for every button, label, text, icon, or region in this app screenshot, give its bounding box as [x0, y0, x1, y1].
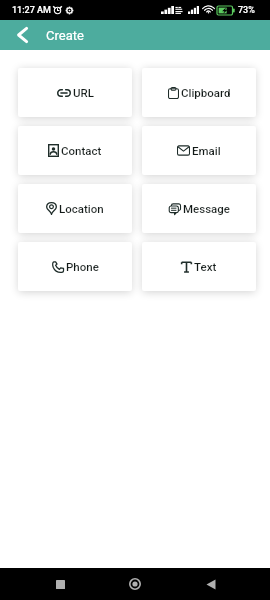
- staticText: Email: [192, 144, 221, 157]
- staticText: URL: [73, 86, 94, 99]
- staticText: Phone: [66, 260, 99, 273]
- button[interactable]: Back: [195, 568, 227, 600]
- staticText: Location: [59, 202, 104, 215]
- button[interactable]: Location: [18, 184, 132, 233]
- button[interactable]: Home: [119, 568, 151, 600]
- staticText: Create: [46, 28, 84, 43]
- staticText: Clipboard: [181, 86, 231, 99]
- button[interactable]: Recent apps: [44, 568, 76, 600]
- staticText: Message: [183, 202, 230, 215]
- button[interactable]: Phone: [18, 242, 132, 291]
- button[interactable]: Text: [142, 242, 256, 291]
- button[interactable]: Email: [142, 126, 256, 175]
- staticText: Text: [194, 260, 217, 273]
- button[interactable]: Message: [142, 184, 256, 233]
- button[interactable]: Contact: [18, 126, 132, 175]
- staticText: Contact: [61, 144, 102, 157]
- button[interactable]: Back: [7, 20, 37, 50]
- staticText: 73%: [238, 5, 255, 16]
- staticText: 11:27 AM: [12, 5, 51, 16]
- button[interactable]: Clipboard: [142, 68, 256, 117]
- button[interactable]: URL: [18, 68, 132, 117]
